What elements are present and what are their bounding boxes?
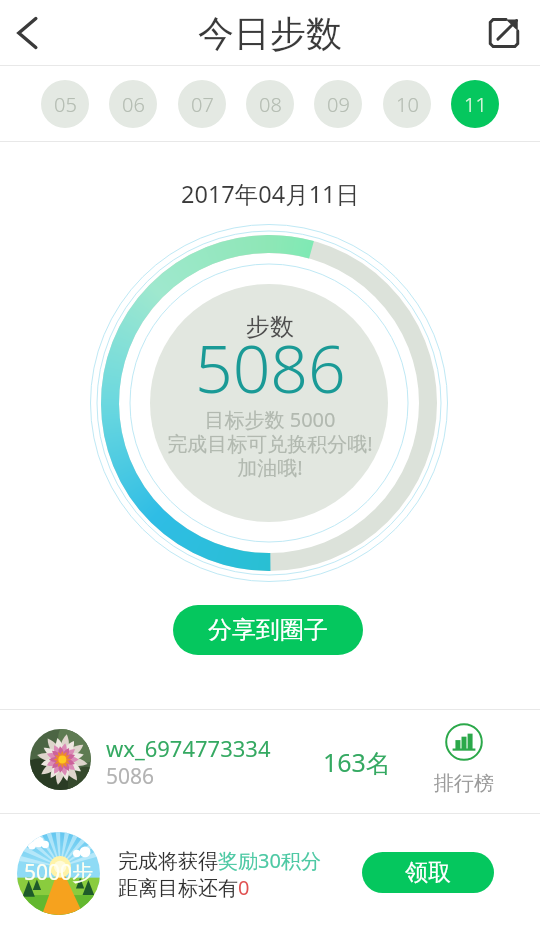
button[interactable]: 08: [246, 80, 294, 128]
staticText: 5086: [195, 322, 346, 412]
staticText: 05: [54, 91, 77, 118]
staticText: 今日步数: [198, 11, 342, 56]
button[interactable]: 07: [178, 80, 226, 128]
staticText: 163名: [323, 745, 391, 779]
staticText: 分享到圈子: [208, 615, 328, 645]
staticText: 目标步数 5000 完成目标可兑换积分哦! 加油哦!: [167, 406, 373, 481]
staticText: 11: [464, 91, 487, 118]
button[interactable]: 11: [451, 80, 499, 128]
button[interactable]: 05: [41, 80, 89, 128]
button[interactable]: 06: [109, 80, 157, 128]
button[interactable]: 10: [383, 80, 431, 128]
button[interactable]: Share: [468, 0, 540, 66]
staticText: 完成将获得奖励30积分: [118, 847, 321, 874]
staticText: 2017年04月11日: [181, 178, 360, 210]
button[interactable]: 领取: [362, 852, 494, 893]
staticText: 10: [396, 91, 419, 118]
staticText: 06: [122, 91, 145, 118]
button[interactable]: 分享到圈子: [173, 605, 363, 655]
button[interactable]: 排行榜: [432, 723, 496, 796]
staticText: wx_6974773334: [106, 733, 271, 763]
staticText: 5086: [106, 762, 155, 791]
button[interactable]: Back: [0, 0, 53, 66]
staticText: 5000步: [24, 858, 94, 887]
staticText: 距离目标还有0: [118, 874, 250, 901]
staticText: 领取: [405, 858, 451, 887]
staticText: 步数: [246, 312, 294, 342]
staticText: 07: [191, 91, 214, 118]
staticText: 09: [327, 91, 350, 118]
staticText: 08: [259, 91, 282, 118]
button[interactable]: 09: [314, 80, 362, 128]
staticText: 排行榜: [434, 771, 494, 796]
